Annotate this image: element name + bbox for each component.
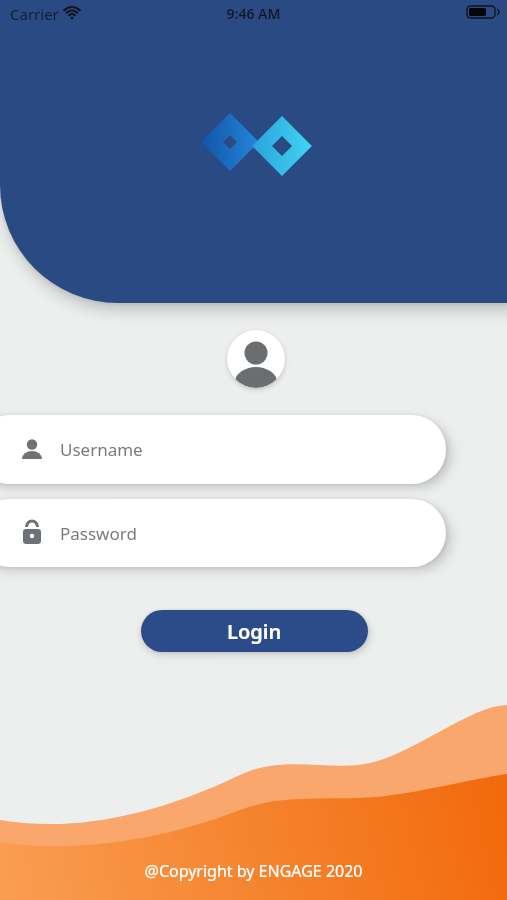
button[interactable]: Username: [0, 415, 446, 484]
staticText: Login: [227, 618, 282, 645]
staticText: Username: [60, 438, 143, 461]
staticText: @Copyright by ENGAGE 2020: [0, 860, 507, 882]
button[interactable]: Login: [141, 610, 368, 652]
staticText: Carrier: [10, 4, 59, 24]
staticText: 9:46 AM: [0, 4, 507, 23]
staticText: Password: [60, 522, 137, 545]
button[interactable]: Password: [0, 499, 446, 567]
